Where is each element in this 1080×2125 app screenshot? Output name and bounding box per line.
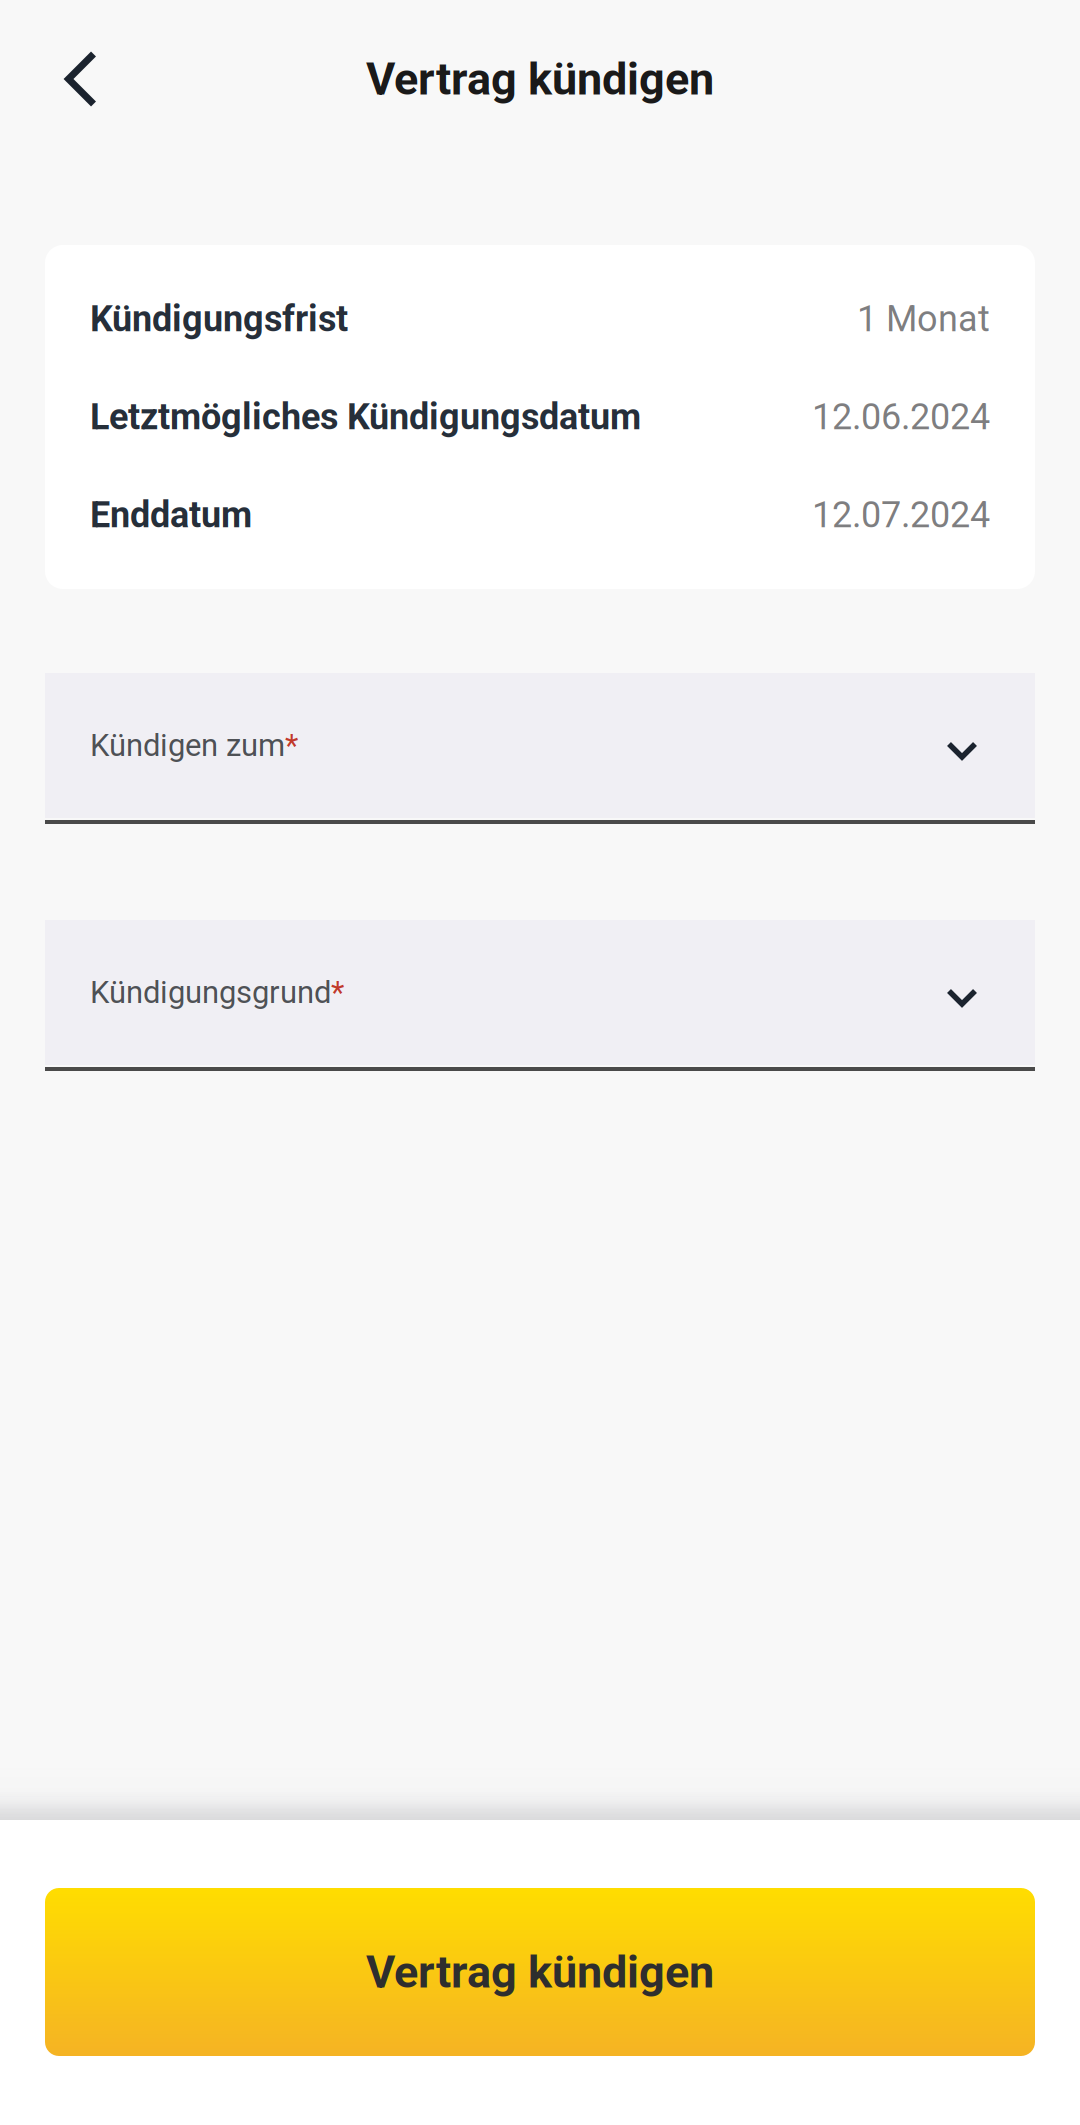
- staticText: *: [285, 727, 298, 764]
- staticText: Kündigen zum: [90, 727, 285, 764]
- staticText: Enddatum: [90, 494, 252, 536]
- staticText: 1 Monat: [857, 298, 990, 340]
- button[interactable]: Kündigungsgrund: [45, 920, 1035, 1071]
- staticText: Kündigungsfrist: [90, 298, 348, 340]
- button[interactable]: Kündigen zum: [45, 673, 1035, 824]
- button[interactable]: Vertrag kündigen: [45, 1888, 1035, 2056]
- staticText: Letztmögliches Kündigungsdatum: [90, 396, 641, 438]
- staticText: Kündigungsgrund: [90, 974, 331, 1011]
- button[interactable]: Zurück: [25, 23, 137, 135]
- staticText: Vertrag kündigen: [366, 1946, 714, 1998]
- staticText: Vertrag kündigen: [366, 53, 714, 105]
- staticText: 12.07.2024: [812, 494, 990, 536]
- staticText: *: [331, 974, 344, 1011]
- staticText: 12.06.2024: [812, 396, 990, 438]
